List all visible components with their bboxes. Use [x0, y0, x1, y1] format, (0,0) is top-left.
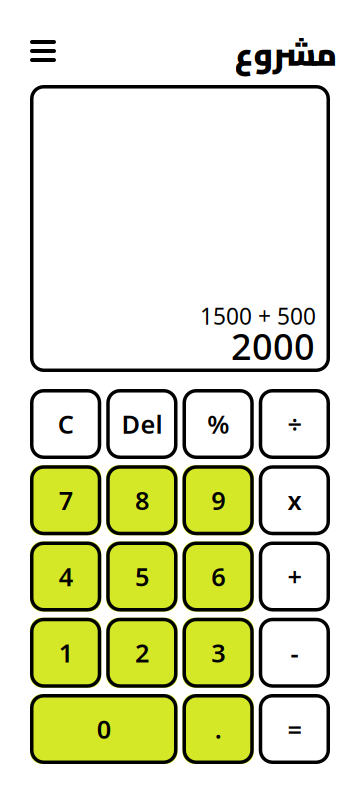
button[interactable]: 7	[30, 465, 101, 535]
staticText: 3	[211, 636, 225, 669]
button[interactable]: Del	[106, 389, 177, 459]
staticText: .	[215, 712, 222, 746]
button[interactable]: C	[30, 389, 101, 459]
button[interactable]: %	[182, 389, 254, 459]
button[interactable]: 9	[182, 465, 254, 535]
button[interactable]: .	[182, 694, 254, 764]
staticText: 2	[135, 636, 149, 669]
staticText: =	[287, 712, 301, 746]
staticText: 9	[211, 483, 225, 517]
staticText: 1500 + 500	[200, 301, 316, 331]
button[interactable]: ÷	[259, 389, 330, 459]
button[interactable]: =	[259, 694, 330, 764]
staticText: مشروع	[234, 24, 337, 84]
staticText: 8	[135, 483, 149, 517]
staticText: +	[287, 560, 301, 593]
button[interactable]: 3	[182, 618, 254, 688]
button[interactable]: 6	[182, 541, 254, 611]
button[interactable]: Menu	[30, 40, 56, 62]
button[interactable]: 2	[106, 618, 177, 688]
staticText: 7	[59, 483, 73, 517]
button[interactable]: 1	[30, 618, 101, 688]
button[interactable]: 5	[106, 541, 177, 611]
staticText: 0	[97, 712, 111, 746]
button[interactable]: x	[259, 465, 330, 535]
staticText: -	[290, 636, 298, 669]
staticText: 1	[59, 636, 73, 669]
button[interactable]: -	[259, 618, 330, 688]
staticText: 4	[59, 560, 73, 593]
staticText: 5	[135, 560, 149, 593]
staticText: x	[287, 483, 301, 517]
staticText: C	[58, 407, 74, 441]
button[interactable]: 4	[30, 541, 101, 611]
staticText: %	[207, 407, 229, 441]
staticText: Del	[121, 407, 162, 441]
staticText: 2000	[231, 322, 315, 370]
staticText: 6	[211, 560, 225, 593]
button[interactable]: +	[259, 541, 330, 611]
button[interactable]: 0	[30, 694, 177, 764]
staticText: ÷	[287, 407, 301, 441]
button[interactable]: 8	[106, 465, 177, 535]
